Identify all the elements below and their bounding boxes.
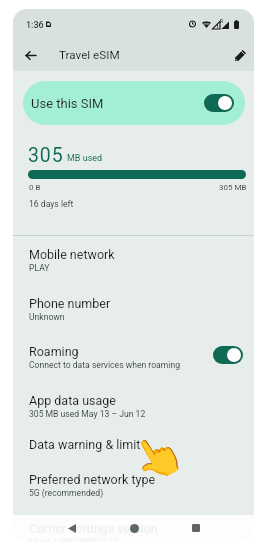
staticText: 305 MB used May 13 – Jun 12 [29,409,146,419]
staticText: Data warning & limit [29,437,141,452]
staticText: App data usage [29,393,116,408]
staticText: 0 B [29,183,41,192]
staticText: 👆 [123,423,192,491]
button[interactable]: Data warning & limit [13,437,254,472]
staticText: Mobile network [29,247,115,262]
staticText: 305 [28,144,64,167]
button[interactable]: Use this SIM [23,81,245,125]
staticText: 305 MB [219,183,247,192]
staticText: Travel eSIM [59,48,120,62]
staticText: 5G (recommended) [29,488,104,498]
staticText: Connect to data services when roaming [29,360,180,370]
button[interactable]: Rename [227,42,253,68]
button[interactable]: Preferred network type [13,472,254,517]
staticText: h3_pt-64000000019.21 [29,537,118,542]
button[interactable]: App data usage [13,393,254,437]
button[interactable]: Mobile network [13,247,254,296]
staticText: Use this SIM [31,96,104,111]
staticText: 1:36 [26,20,44,31]
staticText: PLAY [29,263,50,273]
button[interactable]: Phone number [13,296,254,345]
staticText: 16 days left [29,199,74,209]
staticText: Preferred network type [29,472,156,487]
button[interactable]: Home [124,518,144,538]
staticText: Phone number [29,296,111,311]
button[interactable]: Recent apps [186,518,206,538]
button[interactable]: Roaming [13,344,254,393]
staticText: MB used [67,153,103,164]
staticText: Roaming [29,344,79,359]
button[interactable]: Back [62,518,82,538]
staticText: R [220,18,224,24]
staticText: Carrier settings version [29,521,158,536]
staticText: Unknown [29,312,65,322]
button[interactable]: Navigate up [16,41,44,69]
